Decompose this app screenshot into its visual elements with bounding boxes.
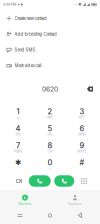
button[interactable]: Backspace xyxy=(83,83,97,95)
staticText: + xyxy=(49,167,51,170)
staticText: Contacts xyxy=(68,202,82,206)
staticText: Meet video call xyxy=(14,63,41,68)
staticText: 5 xyxy=(47,124,52,133)
button[interactable]: 1 xyxy=(2,105,34,122)
staticText: 0 xyxy=(47,158,52,167)
staticText: 6 xyxy=(79,124,84,133)
button[interactable]: # xyxy=(66,156,98,173)
staticText: ABC xyxy=(47,116,53,119)
staticText: 9 xyxy=(79,141,84,150)
button[interactable]: Home xyxy=(40,208,60,222)
button[interactable]: Recents xyxy=(0,190,50,207)
staticText: 4 xyxy=(15,124,20,133)
staticText: PQRS xyxy=(14,150,22,153)
button[interactable]: Create new contact xyxy=(0,10,100,26)
button[interactable]: Video call xyxy=(11,175,27,187)
button[interactable]: ✱ xyxy=(2,156,34,173)
staticText: 7 xyxy=(16,141,20,150)
button[interactable]: Contacts xyxy=(50,190,100,207)
staticText: ⌁ xyxy=(75,2,77,6)
staticText: 8 xyxy=(47,141,52,150)
button[interactable]: 0 xyxy=(34,156,66,173)
staticText: GHI xyxy=(15,133,20,136)
button[interactable]: Send SMS xyxy=(0,42,100,58)
button[interactable]: Call with SIM 2 xyxy=(54,175,74,187)
button[interactable]: 6 xyxy=(66,122,98,139)
button[interactable]: 9 xyxy=(66,139,98,156)
staticText: 4:34 PM xyxy=(3,2,16,7)
staticText: MNO xyxy=(78,133,85,136)
button[interactable]: 4 xyxy=(2,122,34,139)
staticText: Add to Existing Contact xyxy=(14,32,56,37)
button[interactable]: 5 xyxy=(34,122,66,139)
staticText: WXYZ xyxy=(77,150,86,153)
button[interactable]: Meet video call xyxy=(0,58,100,74)
staticText: Create new contact xyxy=(14,16,46,21)
button[interactable]: Recent apps xyxy=(10,208,30,222)
staticText: ∞ xyxy=(16,116,19,119)
button[interactable]: 7 xyxy=(2,139,34,156)
button[interactable]: 8 xyxy=(34,139,66,156)
button[interactable]: 3 xyxy=(66,105,98,122)
button[interactable]: Back xyxy=(70,208,90,222)
staticText: Recents xyxy=(18,202,31,206)
staticText: ✱ xyxy=(15,158,21,167)
staticText: JKL xyxy=(47,133,53,136)
staticText: # xyxy=(79,158,84,167)
button[interactable]: Add to Existing Contact xyxy=(0,26,100,42)
staticText: Send SMS xyxy=(14,47,35,52)
staticText: 1 xyxy=(16,107,19,116)
staticText: DEF xyxy=(79,116,85,119)
staticText: 0620 xyxy=(42,85,58,93)
button[interactable]: Call with SIM 1 xyxy=(29,175,51,187)
staticText: 2 xyxy=(47,107,52,116)
staticText: 3 xyxy=(79,107,84,116)
staticText: TUV xyxy=(47,150,53,153)
button[interactable]: 2 xyxy=(34,105,66,122)
button[interactable]: Hide dialpad xyxy=(76,175,92,187)
